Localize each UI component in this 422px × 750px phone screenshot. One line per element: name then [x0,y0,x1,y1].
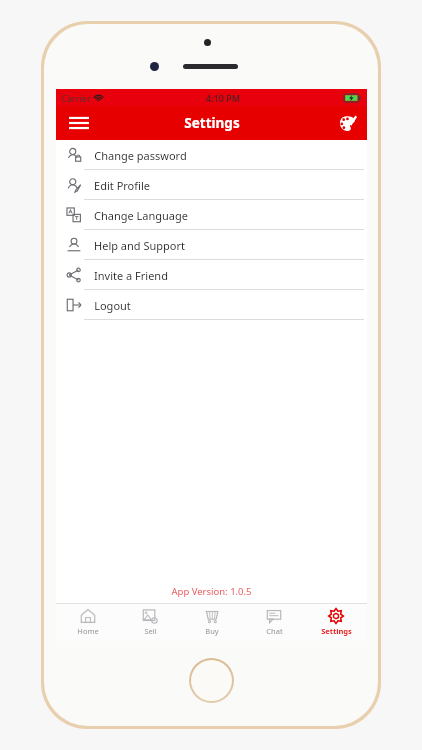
button[interactable]: Theme [333,109,361,137]
staticText: Edit Profile [94,178,150,193]
staticText: Carrier [61,92,91,104]
staticText: Change Language [94,208,188,223]
staticText: 4:10 PM [206,92,240,104]
button[interactable]: Invite a Friend [56,260,367,290]
button[interactable]: Sell [119,603,181,641]
staticText: Change password [94,148,187,163]
staticText: App Version: 1.0.5 [171,585,252,598]
staticText: Chat [266,626,283,636]
button[interactable]: Buy [181,603,243,641]
staticText: Invite a Friend [94,268,168,283]
staticText: Settings [184,114,240,132]
staticText: Home [77,626,99,636]
staticText: Sell [144,626,157,636]
button[interactable]: Logout [56,290,367,320]
button[interactable]: Menu [64,108,94,138]
staticText: Logout [94,298,131,313]
button[interactable]: Change Language [56,200,367,230]
button[interactable]: Change password [56,140,367,170]
other: Home button [189,658,234,703]
staticText: Settings [321,626,352,636]
button[interactable]: Home [56,603,119,641]
staticText: Buy [205,626,219,636]
button[interactable]: Chat [243,603,305,641]
button[interactable]: Settings [305,603,367,641]
button[interactable]: Help and Support [56,230,367,260]
staticText: Help and Support [94,238,185,253]
button[interactable]: Edit Profile [56,170,367,200]
